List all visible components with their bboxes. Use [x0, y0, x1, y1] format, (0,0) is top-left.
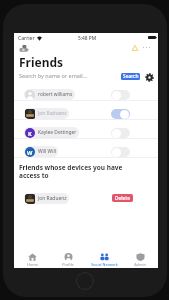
staticText: Search [123, 73, 139, 80]
button[interactable]: Settings [145, 73, 154, 82]
staticText: Carrier [18, 35, 35, 42]
staticText: Kaylee Dettinger [38, 129, 77, 136]
button[interactable]: Social Network [86, 249, 122, 268]
staticText: W [27, 149, 33, 156]
button[interactable]: Home [14, 249, 50, 268]
button[interactable]: robert williams [14, 85, 158, 104]
staticText: Home [27, 262, 38, 267]
staticText: 5:48 PM [78, 35, 97, 42]
button[interactable]: Switch off [111, 128, 130, 138]
staticText: Profile [62, 262, 74, 267]
button[interactable]: Switch off [111, 90, 130, 100]
button[interactable]: Jon Raduenz [24, 193, 69, 204]
button[interactable]: Jon Raduenz [14, 104, 158, 123]
staticText: Search by name or email... [19, 72, 88, 79]
button[interactable]: More options [140, 42, 153, 53]
staticText: Social Network [91, 262, 118, 267]
staticText: Friends whose devices you have access to [19, 163, 135, 180]
staticText: K [28, 130, 32, 137]
staticText: Jon Raduenz [38, 110, 67, 117]
staticText: Admin [134, 262, 146, 267]
button[interactable]: Profile [50, 249, 86, 268]
button[interactable]: Switch off [111, 147, 130, 157]
button[interactable]: Delete [112, 194, 133, 202]
staticText: Jon Raduenz [38, 195, 67, 202]
staticText: Delete [115, 195, 130, 202]
button[interactable]: Search [121, 73, 140, 80]
button[interactable]: Warning [129, 42, 140, 53]
button[interactable]: K [14, 123, 158, 142]
button[interactable]: Admin [122, 249, 158, 268]
button[interactable]: W [14, 142, 158, 161]
staticText: Friends [19, 54, 64, 70]
button[interactable]: Switch on [111, 109, 130, 119]
staticText: Will Will [38, 148, 56, 155]
staticText: robert williams [38, 91, 73, 98]
